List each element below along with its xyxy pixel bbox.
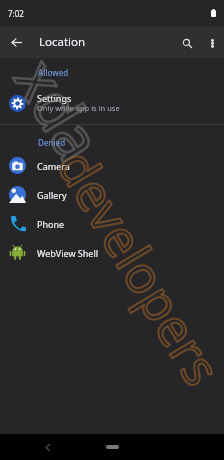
staticText: Denied bbox=[38, 137, 66, 148]
button[interactable]: Home bbox=[106, 445, 119, 449]
staticText: 7:02 bbox=[8, 8, 24, 19]
button[interactable]: Settings bbox=[0, 86, 224, 120]
staticText: Phone bbox=[37, 218, 65, 230]
staticText: Location bbox=[39, 34, 86, 50]
staticText: Only while app is in use bbox=[37, 103, 120, 113]
button[interactable]: Search bbox=[174, 30, 200, 56]
staticText: Gallery bbox=[37, 189, 67, 201]
staticText: Allowed bbox=[38, 67, 69, 78]
staticText: WebView Shell bbox=[37, 247, 99, 259]
staticText: Settings bbox=[37, 92, 72, 104]
button[interactable]: Camera bbox=[0, 151, 224, 180]
button[interactable]: Gallery bbox=[0, 180, 224, 209]
staticText: Camera bbox=[37, 160, 70, 172]
button[interactable]: Back bbox=[0, 27, 33, 58]
button[interactable]: Back bbox=[40, 439, 56, 455]
button[interactable]: WebView Shell bbox=[0, 238, 224, 267]
button[interactable]: Phone bbox=[0, 209, 224, 238]
button[interactable]: More options bbox=[200, 31, 224, 55]
